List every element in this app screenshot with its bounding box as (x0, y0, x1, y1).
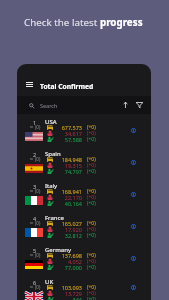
button[interactable]: Sort (119, 97, 132, 113)
staticText: 344 (55, 296, 82, 300)
staticText: 57,588 (55, 136, 82, 142)
staticText: (+0) (87, 156, 96, 162)
button[interactable]: Info (125, 122, 141, 138)
button[interactable]: Info (125, 250, 141, 266)
staticText: 74,797 (55, 168, 82, 174)
button[interactable]: Info (125, 279, 141, 295)
staticText: 40,164 (55, 200, 82, 206)
staticText: (0) (35, 220, 41, 226)
staticText: (+0) (87, 162, 96, 168)
staticText: Germany (45, 246, 71, 254)
button[interactable]: Filter (133, 97, 146, 113)
staticText: 1 (33, 119, 37, 126)
staticText: USA (45, 118, 57, 126)
button[interactable]: Info (125, 186, 141, 202)
staticText: (+0) (87, 232, 96, 238)
staticText: 19,315 (55, 162, 82, 168)
staticText: Check the latest (24, 16, 100, 29)
staticText: (+0) (87, 296, 96, 300)
staticText: 184,948 (55, 156, 82, 162)
staticText: Search (40, 102, 58, 109)
button[interactable]: 5 (17, 242, 151, 274)
staticText: (0) (35, 156, 41, 162)
button[interactable]: Info (125, 218, 141, 234)
staticText: (+0) (87, 252, 96, 258)
staticText: 22,170 (55, 194, 82, 200)
staticText: 5 (33, 247, 37, 254)
staticText: (+0) (87, 194, 96, 200)
staticText: 2 (33, 151, 37, 158)
button[interactable]: Menu (22, 77, 36, 91)
staticText: Italy (45, 182, 58, 190)
button[interactable]: 6 (17, 274, 151, 300)
staticText: 32,812 (55, 232, 82, 238)
staticText: (+0) (87, 200, 96, 206)
staticText: progress (100, 16, 143, 29)
staticText: (+0) (87, 284, 96, 290)
staticText: (+0) (87, 264, 96, 270)
staticText: 77,000 (55, 264, 82, 270)
staticText: (0) (35, 124, 41, 130)
staticText: 165,027 (55, 220, 82, 226)
staticText: (0) (35, 252, 41, 258)
staticText: (+0) (87, 136, 96, 142)
button[interactable]: Info (125, 154, 141, 170)
staticText: France (45, 214, 64, 222)
staticText: (+0) (87, 130, 96, 136)
staticText: (+0) (87, 226, 96, 232)
staticText: (+0) (87, 220, 96, 226)
button[interactable]: 1 (17, 114, 151, 146)
staticText: (0) (35, 188, 41, 194)
staticText: (+0) (87, 188, 96, 194)
staticText: (+0) (87, 124, 96, 130)
staticText: 137,698 (55, 252, 82, 258)
button[interactable]: 3 (17, 178, 151, 210)
staticText: (+0) (87, 290, 96, 296)
button[interactable]: 2 (17, 146, 151, 178)
staticText: 168,941 (55, 188, 82, 194)
button[interactable]: 4 (17, 210, 151, 242)
staticText: Total Confirmed (40, 82, 94, 91)
staticText: 34,617 (55, 130, 82, 136)
button[interactable]: Menu (17, 64, 151, 96)
staticText: 13,729 (55, 290, 82, 296)
staticText: 6 (33, 279, 37, 286)
staticText: 3 (33, 183, 37, 190)
staticText: UK (45, 278, 54, 286)
staticText: 4,052 (55, 258, 82, 264)
staticText: (0) (35, 284, 41, 290)
staticText: 677,573 (55, 124, 82, 130)
staticText: 17,920 (55, 226, 82, 232)
staticText: 103,093 (55, 284, 82, 290)
staticText: Spain (45, 150, 61, 158)
staticText: (+0) (87, 258, 96, 264)
staticText: (+0) (87, 168, 96, 174)
staticText: 4 (33, 215, 37, 222)
